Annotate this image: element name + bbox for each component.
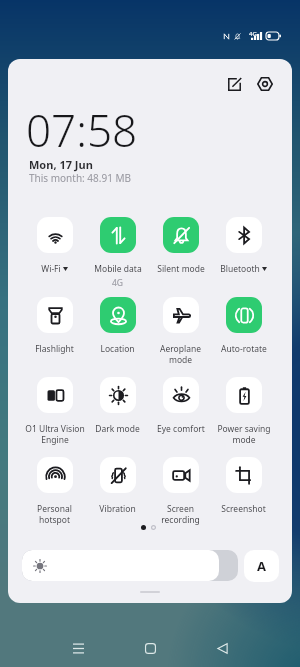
button[interactable]: Power saving mode bbox=[212, 377, 275, 445]
staticText: Screenshot bbox=[221, 503, 266, 515]
button[interactable]: Flashlight bbox=[23, 297, 86, 355]
staticText: Vibration bbox=[99, 503, 136, 515]
button[interactable]: Home bbox=[132, 630, 169, 667]
staticText: Personal hotspot bbox=[37, 503, 72, 525]
staticText: Auto-rotate bbox=[221, 343, 267, 355]
button[interactable]: Screen recording bbox=[149, 457, 212, 525]
staticText: A bbox=[257, 557, 266, 575]
button[interactable]: Screenshot bbox=[212, 457, 275, 515]
staticText: Bluetooth bbox=[220, 263, 260, 275]
button[interactable]: Eye comfort bbox=[149, 377, 212, 435]
staticText: Power saving mode bbox=[217, 423, 271, 445]
button[interactable]: Silent mode bbox=[149, 217, 212, 275]
staticText: Flashlight bbox=[35, 343, 74, 355]
staticText: 4G bbox=[249, 30, 257, 38]
staticText: Location bbox=[100, 343, 135, 355]
staticText: Aeroplane mode bbox=[160, 343, 201, 365]
button[interactable]: Settings bbox=[248, 67, 282, 101]
button[interactable] bbox=[22, 550, 238, 581]
button[interactable]: Vibration bbox=[86, 457, 149, 515]
staticText: Screen recording bbox=[161, 503, 200, 525]
button[interactable]: Recent apps bbox=[60, 630, 97, 667]
button[interactable]: Location bbox=[86, 297, 149, 355]
button[interactable]: Dark mode bbox=[86, 377, 149, 435]
staticText: This month: 48.91 MB bbox=[29, 171, 132, 185]
button[interactable]: Back bbox=[204, 630, 241, 667]
staticText: Silent mode bbox=[157, 263, 205, 275]
staticText: 4G bbox=[112, 277, 124, 289]
staticText: Mobile data bbox=[94, 263, 142, 275]
staticText: Eye comfort bbox=[157, 423, 205, 435]
button[interactable]: Auto-rotate bbox=[212, 297, 275, 355]
button[interactable]: Aeroplane mode bbox=[149, 297, 212, 365]
staticText: 07:58 bbox=[26, 100, 138, 160]
staticText: Mon, 17 Jun bbox=[29, 157, 93, 172]
staticText: Wi-Fi bbox=[41, 263, 61, 275]
staticText: O1 Ultra Vision Engine bbox=[25, 423, 85, 445]
button[interactable]: A bbox=[244, 550, 279, 582]
button[interactable]: Personal hotspot bbox=[23, 457, 86, 525]
button[interactable]: Bluetooth bbox=[212, 217, 275, 275]
button[interactable]: O1 Ultra Vision Engine bbox=[23, 377, 86, 445]
button[interactable]: Edit bbox=[217, 67, 251, 101]
staticText: Dark mode bbox=[95, 423, 140, 435]
button[interactable]: Mobile data bbox=[86, 217, 149, 289]
button[interactable]: Wi-Fi bbox=[23, 217, 86, 275]
